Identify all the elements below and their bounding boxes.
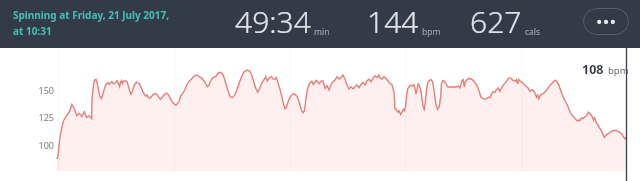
staticText: 627 — [470, 1, 522, 42]
staticText: 144 — [367, 1, 419, 42]
staticText: bpm — [422, 26, 441, 38]
staticText: 49:34 — [235, 1, 311, 42]
button[interactable]: 144 — [367, 1, 441, 42]
button[interactable]: 627 — [470, 1, 541, 42]
staticText: Spinning at Friday, 21 July 2017, — [13, 8, 170, 22]
staticText: 108 — [582, 61, 604, 78]
staticText: 100 — [28, 139, 54, 151]
staticText: at 10:31 — [13, 24, 52, 38]
button[interactable]: Spinning at Friday, 21 July 2017, — [13, 8, 173, 38]
staticText: 150 — [28, 84, 54, 96]
button[interactable]: More options — [583, 8, 629, 35]
staticText: min — [314, 26, 330, 38]
staticText: cals — [525, 26, 541, 38]
button[interactable]: 49:34 — [235, 1, 330, 42]
staticText: 125 — [28, 111, 54, 123]
staticText: bpm — [608, 64, 629, 77]
